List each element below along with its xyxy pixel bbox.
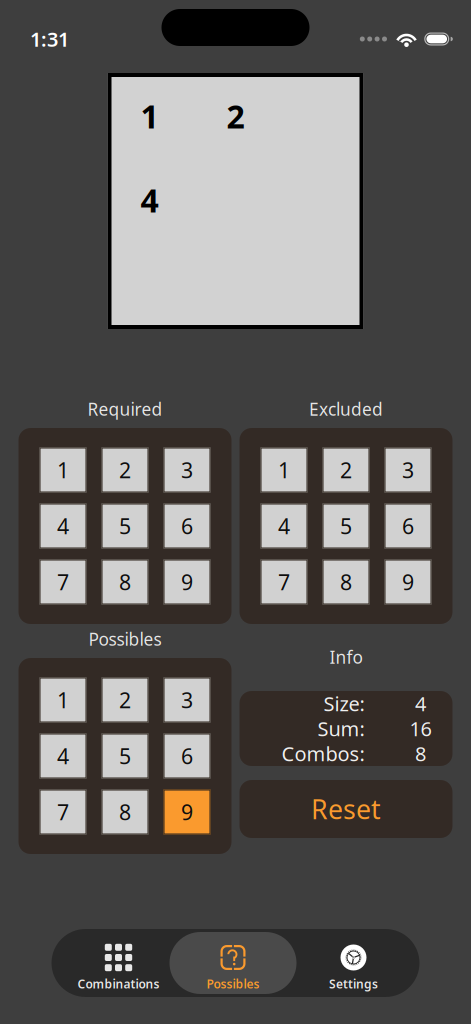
staticText: 8 (119, 798, 131, 826)
button[interactable]: 2 (101, 677, 148, 722)
button[interactable]: 5 (101, 503, 148, 548)
staticText: 5 (119, 512, 131, 540)
staticText: 8 (415, 740, 426, 767)
button[interactable]: 1 (39, 447, 86, 492)
staticText: Possibles (206, 976, 259, 992)
staticText: 7 (57, 798, 69, 826)
staticText: 2 (226, 95, 244, 137)
staticText: 9 (181, 798, 193, 826)
staticText: 5 (340, 512, 352, 540)
button[interactable]: 9 (163, 789, 210, 834)
staticText: 2 (340, 456, 352, 484)
staticText: Combinations (77, 976, 159, 992)
button[interactable]: 3 (163, 447, 210, 492)
staticText: 16 (409, 715, 431, 742)
staticText: 4 (415, 690, 426, 717)
button[interactable]: 3 (384, 447, 431, 492)
button[interactable]: Settings (296, 932, 410, 994)
button[interactable]: 7 (39, 789, 86, 834)
button[interactable]: 8 (322, 559, 369, 604)
staticText: 1 (140, 95, 158, 137)
staticText: Size: (323, 690, 364, 717)
staticText: 8 (119, 568, 131, 596)
staticText: 7 (278, 568, 290, 596)
staticText: 2 (119, 686, 131, 714)
staticText: 1:31 (30, 26, 69, 52)
button[interactable]: 4 (260, 503, 307, 548)
staticText: 1 (57, 686, 69, 714)
staticText: 6 (181, 742, 193, 770)
staticText: 9 (402, 568, 414, 596)
staticText: 8 (340, 568, 352, 596)
button[interactable]: 8 (101, 789, 148, 834)
button[interactable]: 2 (322, 447, 369, 492)
staticText: 5 (119, 742, 131, 770)
button[interactable]: 6 (163, 503, 210, 548)
staticText: 4 (57, 742, 69, 770)
staticText: 6 (181, 512, 193, 540)
staticText: Required (87, 397, 162, 420)
button[interactable]: 6 (384, 503, 431, 548)
staticText: 6 (402, 512, 414, 540)
staticText: 4 (57, 512, 69, 540)
staticText: Info (329, 645, 362, 668)
staticText: 1 (57, 456, 69, 484)
staticText: 7 (57, 568, 69, 596)
button[interactable]: 5 (322, 503, 369, 548)
button[interactable]: 9 (384, 559, 431, 604)
staticText: 3 (402, 456, 414, 484)
staticText: 9 (181, 568, 193, 596)
staticText: Combos: (281, 740, 364, 767)
staticText: Settings (329, 976, 378, 992)
button[interactable]: 3 (163, 677, 210, 722)
staticText: Sum: (317, 715, 364, 742)
button[interactable]: 6 (163, 733, 210, 778)
button[interactable]: 7 (39, 559, 86, 604)
button[interactable]: Possibles (169, 932, 296, 994)
button[interactable]: 1 (260, 447, 307, 492)
staticText: Reset (311, 791, 381, 827)
button[interactable]: 4 (39, 503, 86, 548)
staticText: Possibles (88, 627, 161, 650)
button[interactable]: 7 (260, 559, 307, 604)
button[interactable]: Reset (239, 780, 452, 838)
staticText: 2 (119, 456, 131, 484)
staticText: Excluded (309, 397, 383, 420)
staticText: 3 (181, 456, 193, 484)
button[interactable]: 4 (39, 733, 86, 778)
button[interactable]: 5 (101, 733, 148, 778)
button[interactable]: Combinations (67, 932, 169, 994)
button[interactable]: 1 (39, 677, 86, 722)
button[interactable]: 9 (163, 559, 210, 604)
staticText: 1 (278, 456, 290, 484)
staticText: 3 (181, 686, 193, 714)
staticText: 4 (140, 179, 158, 221)
staticText: 4 (278, 512, 290, 540)
button[interactable]: 8 (101, 559, 148, 604)
button[interactable]: 2 (101, 447, 148, 492)
